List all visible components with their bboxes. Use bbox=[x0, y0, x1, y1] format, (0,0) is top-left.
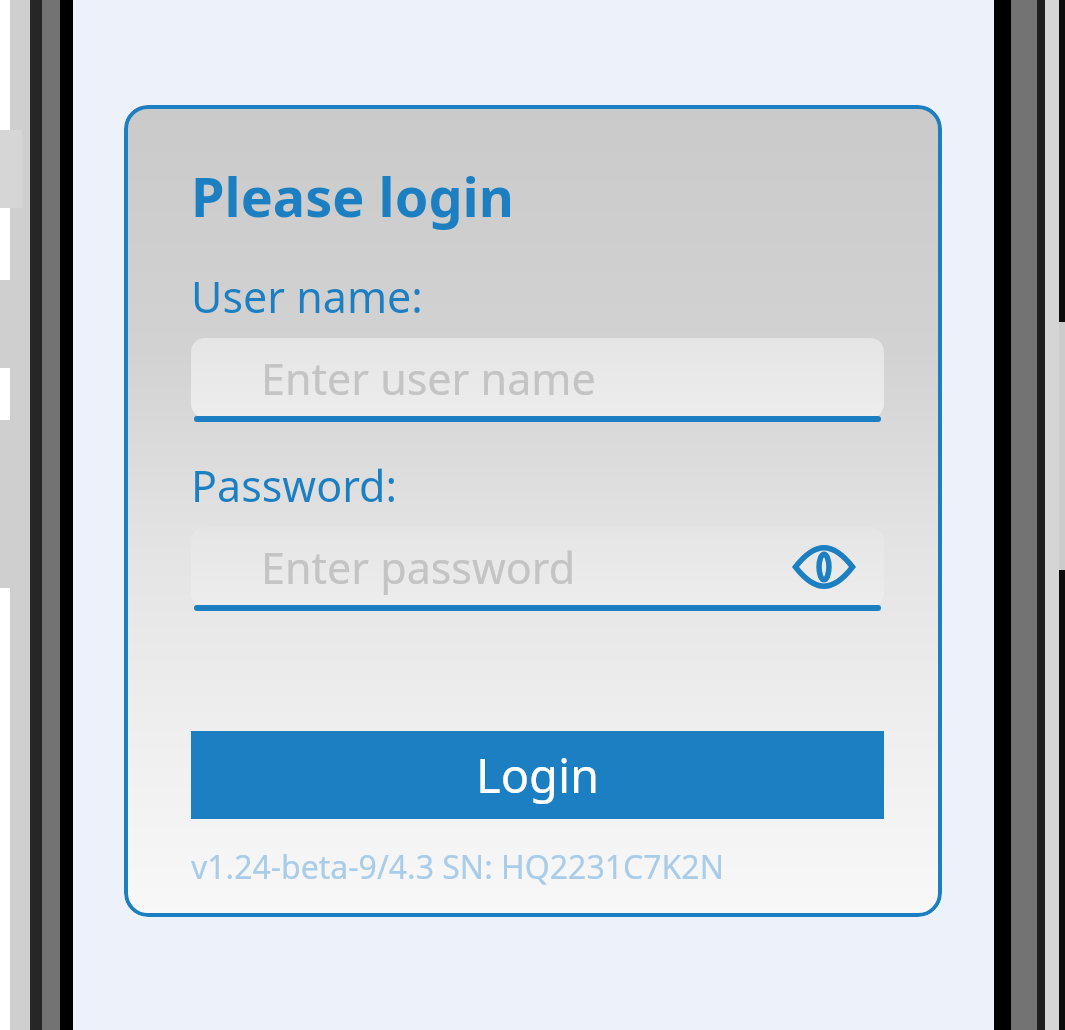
button[interactable]: Enter user name bbox=[191, 338, 884, 424]
button[interactable]: Login bbox=[191, 731, 884, 819]
staticText: Password: bbox=[191, 456, 398, 515]
staticText: Enter user name bbox=[261, 349, 596, 408]
staticText: v1.24-beta-9/4.3 SN: HQ2231C7K2N bbox=[191, 845, 724, 889]
staticText: Please login bbox=[191, 159, 514, 233]
button[interactable]: Show password bbox=[788, 540, 860, 594]
staticText: Enter password bbox=[261, 538, 576, 597]
staticText: User name: bbox=[191, 267, 423, 326]
button[interactable]: Enter password bbox=[191, 527, 884, 613]
staticText: Login bbox=[476, 743, 600, 807]
